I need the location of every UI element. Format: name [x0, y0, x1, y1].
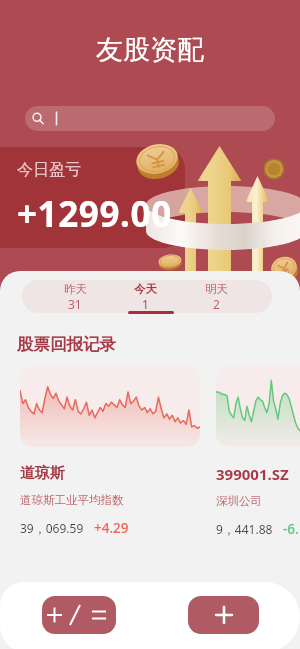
button[interactable]: 昨天 — [40, 280, 110, 313]
button[interactable]: Search — [25, 106, 275, 131]
button[interactable]: 明天 — [181, 280, 252, 313]
staticText: 31 — [68, 296, 82, 312]
button[interactable] — [20, 366, 200, 447]
staticText: 深圳公司 — [216, 494, 262, 508]
staticText: +4.29 — [94, 519, 129, 537]
button[interactable]: 今天 — [110, 280, 181, 313]
staticText: 今日盈亏 — [17, 160, 81, 180]
staticText: 9，441.88 — [216, 521, 273, 537]
staticText: -6. — [283, 520, 299, 538]
staticText: +1299.00 — [17, 190, 172, 238]
staticText: 昨天 — [64, 282, 87, 296]
staticText: 今天 — [134, 282, 157, 296]
button[interactable] — [216, 366, 300, 447]
staticText: 道琼斯工业平均指数 — [20, 493, 124, 507]
staticText: 39，069.59 — [20, 520, 84, 536]
staticText: 399001.SZ — [216, 464, 289, 484]
button[interactable]: Calculator — [42, 596, 116, 634]
button[interactable]: Add — [188, 596, 259, 634]
staticText: 股票回报记录 — [17, 334, 116, 355]
staticText: 1 — [142, 296, 149, 312]
staticText: 道琼斯 — [20, 464, 65, 483]
staticText: 2 — [213, 296, 220, 312]
staticText: 友股资配 — [96, 33, 204, 67]
staticText: 明天 — [205, 282, 228, 296]
